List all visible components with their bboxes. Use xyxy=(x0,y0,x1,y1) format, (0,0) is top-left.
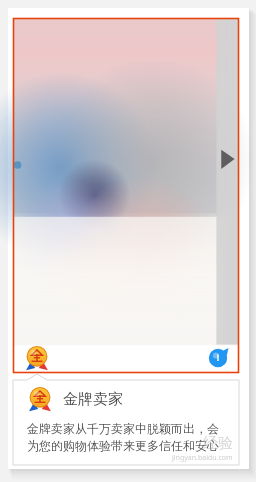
staticText: 金牌卖家从千万卖家中脱颖而出，会为您的购物体验带来更多信任和安心 xyxy=(27,421,225,453)
button[interactable]: Verified badge xyxy=(208,348,228,368)
staticText: 经验 xyxy=(203,434,233,453)
staticText: jingyan.baidu.com xyxy=(172,453,233,463)
button[interactable]: Next image xyxy=(218,146,236,172)
staticText: 金牌卖家 xyxy=(63,390,123,409)
button[interactable]: Previous image xyxy=(14,158,21,172)
button[interactable]: Gold seller badge xyxy=(24,345,50,371)
